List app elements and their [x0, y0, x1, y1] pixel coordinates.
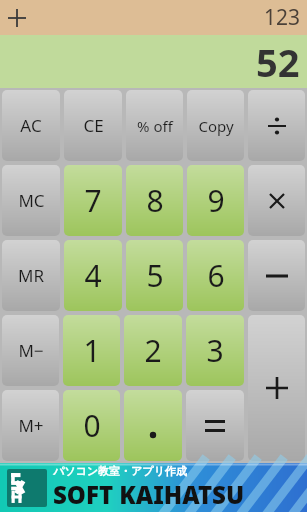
button[interactable]: CE [64, 90, 122, 161]
button[interactable]: M+ [2, 390, 59, 461]
button[interactable]: 3 [186, 315, 244, 386]
staticText: パソコン教室・アプリ作成 [53, 464, 187, 478]
other: Pending operation plus [6, 7, 28, 29]
button[interactable]: 5 [126, 240, 183, 311]
staticText: 0 [83, 405, 101, 446]
button[interactable]: 7 [64, 165, 122, 236]
button[interactable]: 9 [187, 165, 244, 236]
staticText: CE [83, 114, 104, 137]
staticText: 9 [207, 180, 225, 221]
staticText: MC [18, 189, 45, 212]
button[interactable]: 6 [187, 240, 244, 311]
staticText: SOFT KAIHATSU [53, 478, 245, 511]
button[interactable]: 0 [63, 390, 120, 461]
staticText: 123 [264, 3, 301, 32]
button[interactable]: 2 [124, 315, 182, 386]
staticText: Copy [198, 116, 234, 136]
staticText: 1 [83, 330, 101, 371]
button[interactable]: Decimal point [124, 390, 182, 461]
staticText: 6 [207, 255, 225, 296]
staticText: 52 [256, 36, 300, 88]
button[interactable]: Equals [186, 390, 244, 461]
button[interactable]: Advertisement: Soft Kaihatsu [0, 463, 307, 512]
button[interactable]: Copy [187, 90, 244, 161]
button[interactable]: Add [248, 315, 305, 461]
button[interactable]: MC [2, 165, 60, 236]
staticText: 8 [146, 180, 164, 221]
button[interactable]: Subtract [248, 240, 305, 311]
staticText: 7 [84, 180, 102, 221]
button[interactable]: 8 [126, 165, 183, 236]
staticText: AC [20, 114, 42, 137]
button[interactable]: 4 [64, 240, 122, 311]
button[interactable]: 1 [63, 315, 120, 386]
button[interactable]: AC [2, 90, 60, 161]
staticText: 3 [206, 330, 224, 371]
staticText: % off [137, 116, 173, 136]
staticText: M− [18, 339, 44, 362]
staticText: 5 [146, 255, 164, 296]
button[interactable]: Multiply [248, 165, 305, 236]
staticText: 4 [84, 255, 102, 296]
staticText: MR [18, 264, 44, 287]
button[interactable]: % off [126, 90, 183, 161]
button[interactable]: MR [2, 240, 60, 311]
staticText: 2 [144, 330, 162, 371]
button[interactable]: Divide [248, 90, 305, 161]
button[interactable]: M− [2, 315, 59, 386]
staticText: M+ [18, 414, 44, 437]
